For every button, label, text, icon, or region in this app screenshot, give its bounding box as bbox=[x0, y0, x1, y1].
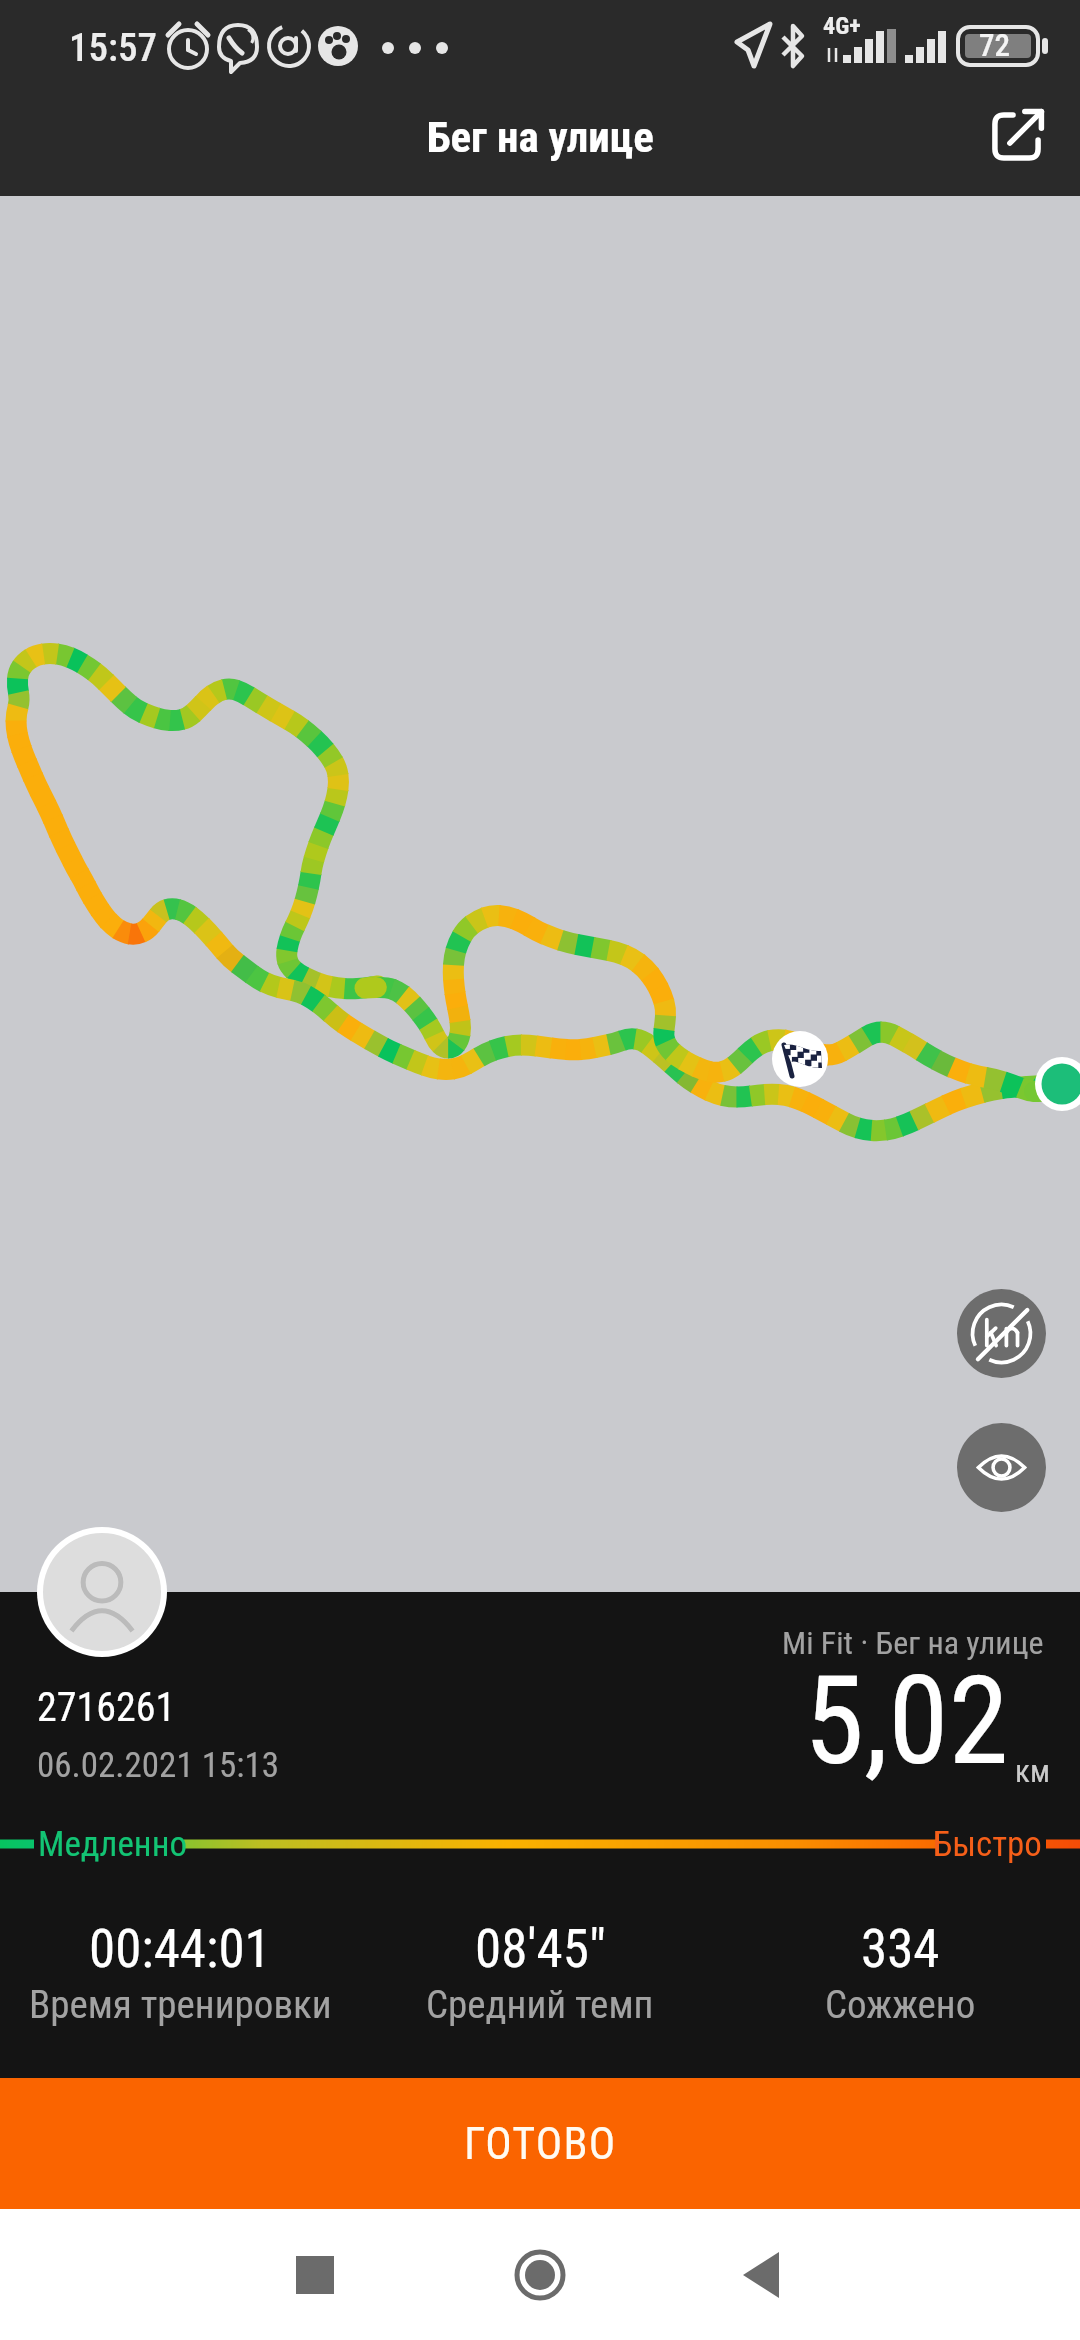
staticText: Средний темп bbox=[426, 1982, 654, 2028]
staticText: Бег на улице bbox=[427, 112, 654, 162]
button[interactable]: ГОТОВО bbox=[0, 2078, 1080, 2209]
staticText: 15:57 bbox=[69, 25, 157, 71]
staticText: 06.02.2021 15:13 bbox=[37, 1745, 279, 1786]
button[interactable]: Share bbox=[975, 95, 1058, 178]
staticText: 08'45" bbox=[475, 1918, 606, 1980]
button[interactable]: Toggle units bbox=[957, 1289, 1046, 1378]
staticText: 334 bbox=[861, 1918, 940, 1980]
staticText: 00:44:01 bbox=[89, 1918, 271, 1980]
staticText: км bbox=[1015, 1753, 1050, 1789]
button[interactable]: Recents bbox=[270, 2230, 360, 2320]
staticText: 2716261 bbox=[37, 1684, 176, 1731]
button[interactable]: Back bbox=[716, 2230, 806, 2320]
staticText: Медленно bbox=[38, 1824, 188, 1865]
staticText: 5,02 bbox=[804, 1650, 1009, 1793]
staticText: Сожжено bbox=[825, 1982, 976, 2028]
staticText: Время тренировки bbox=[29, 1982, 332, 2028]
staticText: Быстро bbox=[933, 1824, 1042, 1865]
button[interactable]: Profile bbox=[37, 1527, 167, 1657]
button[interactable]: Home bbox=[495, 2230, 585, 2320]
staticText: ГОТОВО bbox=[464, 2118, 617, 2170]
staticText: 72 bbox=[979, 27, 1010, 63]
staticText: 4G+ bbox=[823, 12, 861, 40]
button[interactable]: Show details bbox=[957, 1423, 1046, 1512]
staticText: Mi Fit · Бег на улице bbox=[782, 1624, 1044, 1662]
